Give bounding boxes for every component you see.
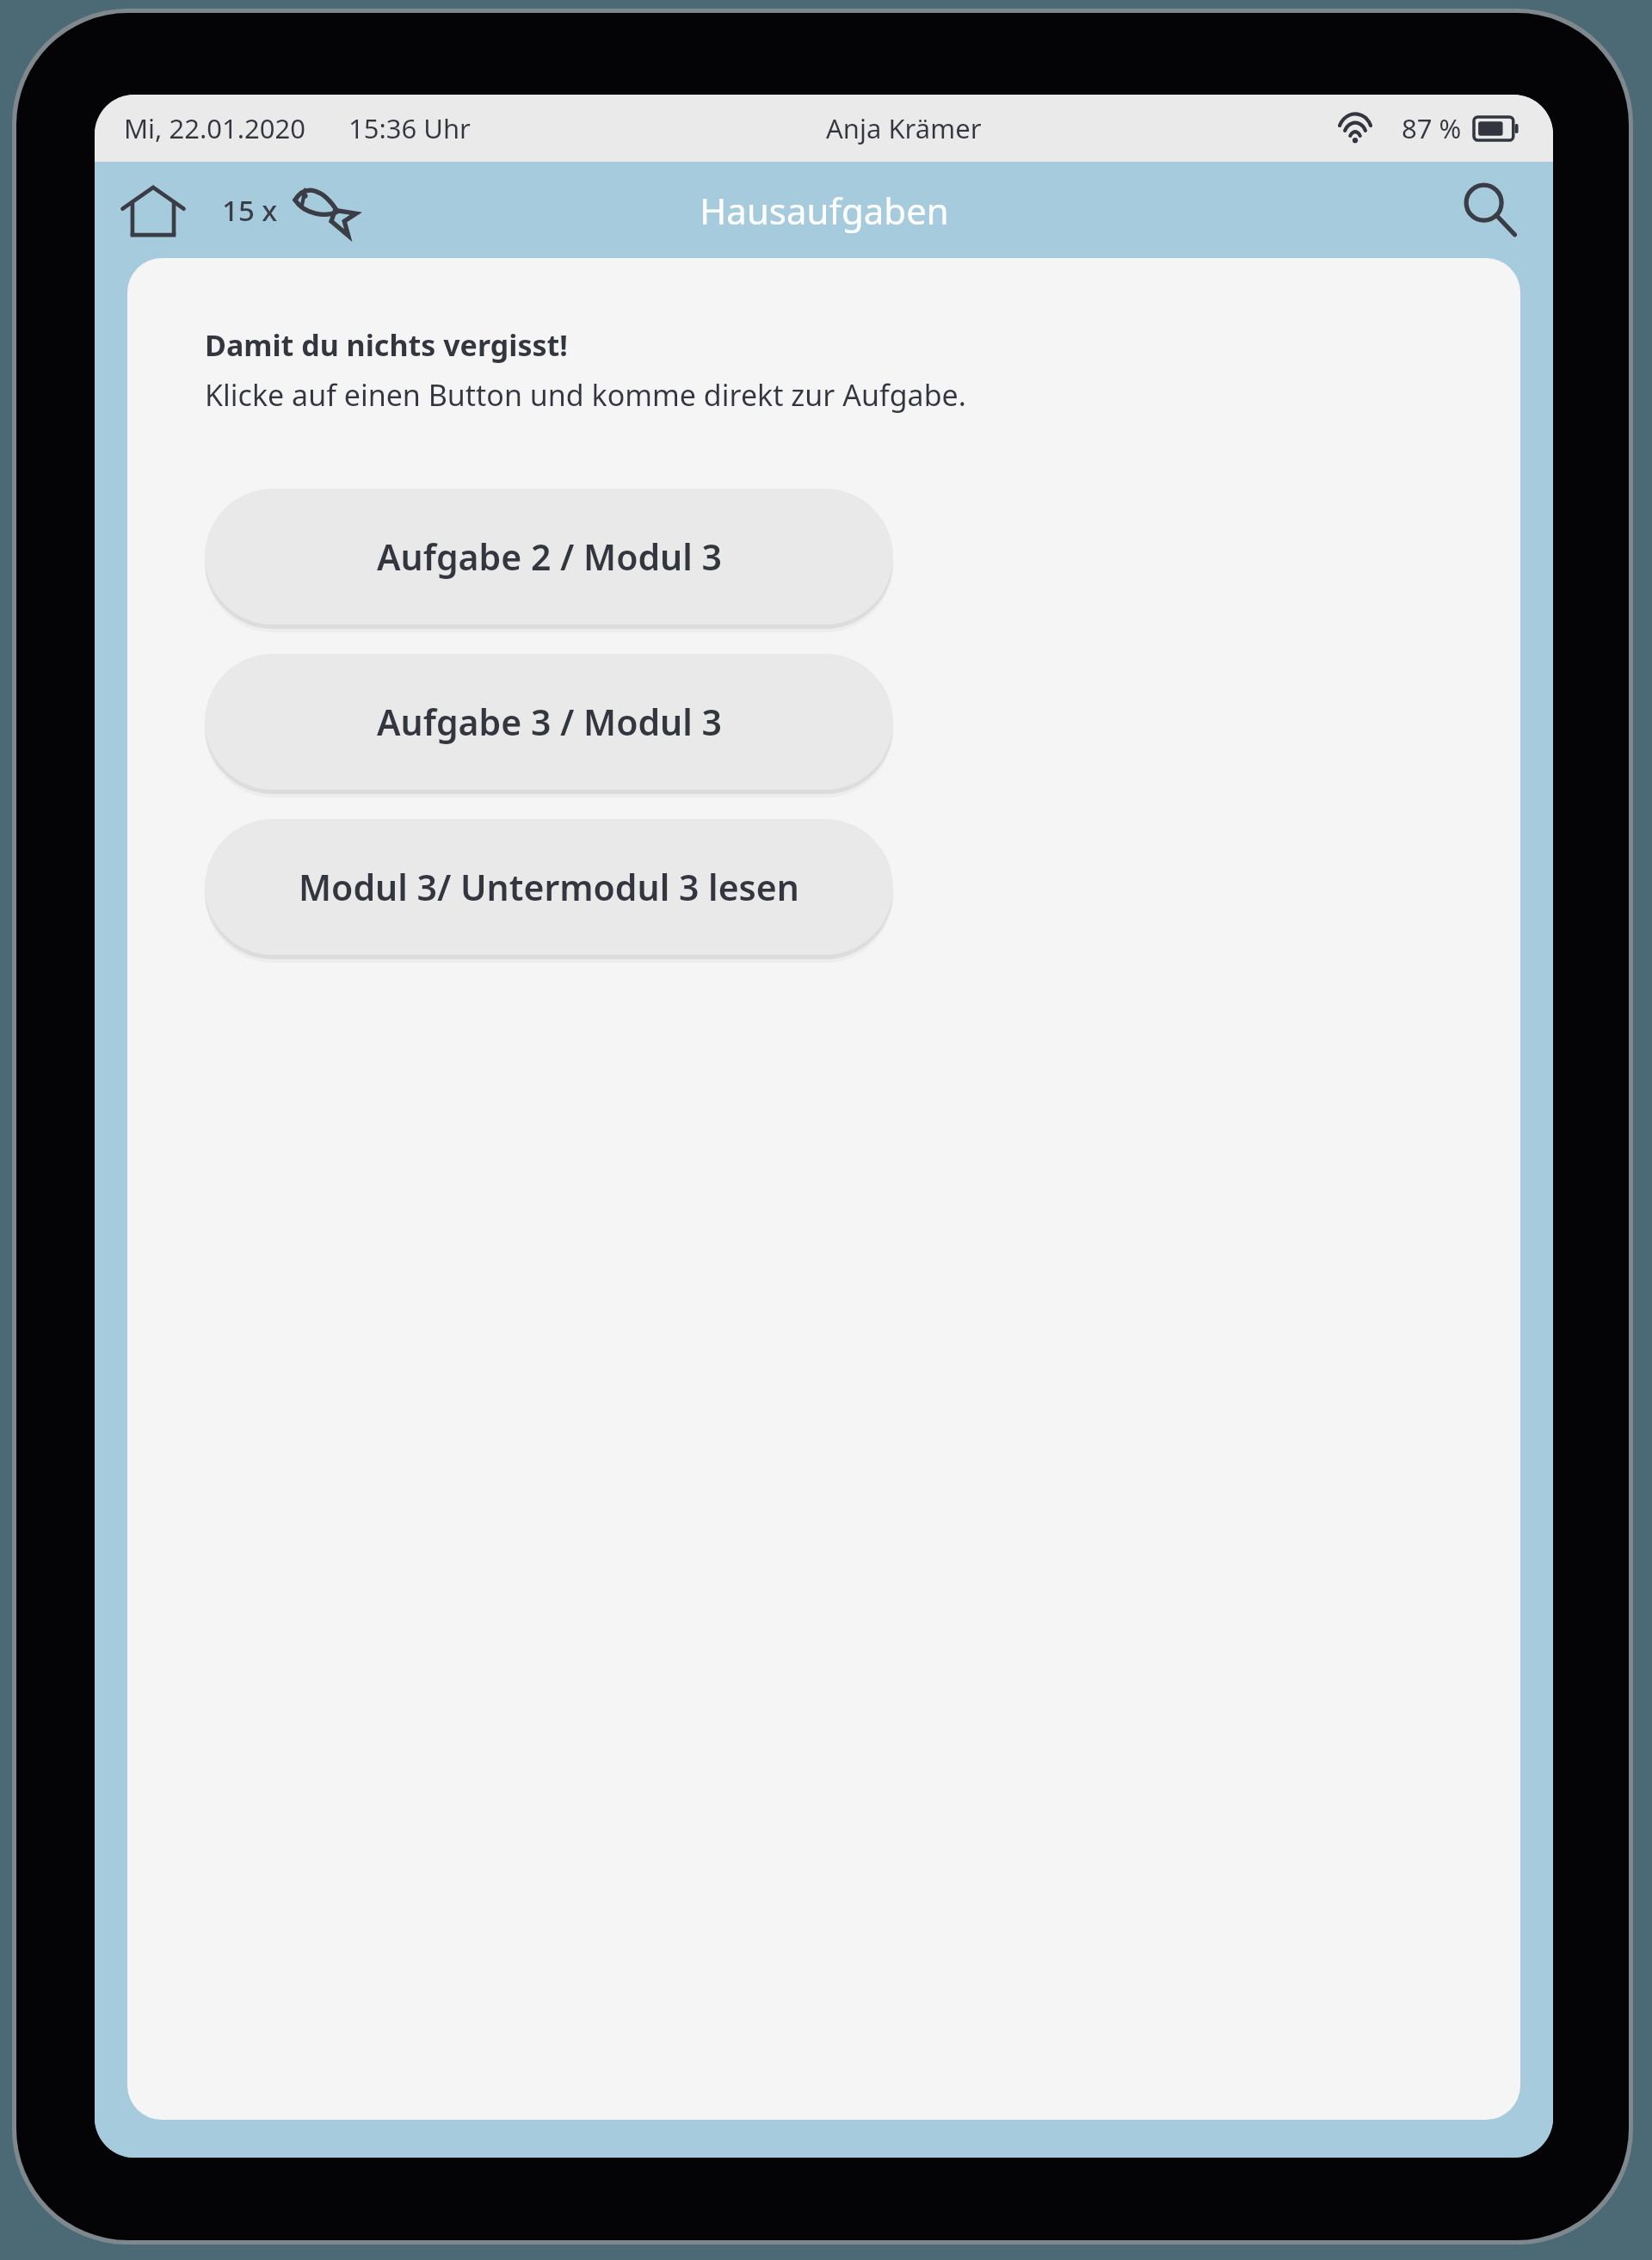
staticText: Damit du nichts vergisst!	[205, 325, 568, 365]
button[interactable]: Modul 3/ Untermodul 3 lesen	[205, 819, 893, 955]
staticText: Klicke auf einen Button und komme direkt…	[205, 375, 966, 415]
button[interactable]: Aufgabe 2 / Modul 3	[205, 489, 893, 625]
staticText: Anja Krämer	[826, 110, 982, 146]
button[interactable]: Home	[115, 175, 191, 245]
button[interactable]: Aufgabe 3 / Modul 3	[205, 654, 893, 790]
staticText: Aufgabe 2 / Modul 3	[377, 533, 722, 581]
button[interactable]: Search	[1450, 170, 1529, 249]
staticText: 15 x	[222, 191, 278, 230]
staticText: Mi, 22.01.2020	[124, 110, 305, 146]
staticText: Modul 3/ Untermodul 3 lesen	[299, 863, 799, 911]
staticText: Hausaufgaben	[700, 186, 949, 235]
button[interactable]: 15 Fische	[219, 176, 361, 244]
staticText: Aufgabe 3 / Modul 3	[377, 698, 722, 746]
staticText: 15:36 Uhr	[348, 110, 471, 146]
staticText: 87 %	[1402, 110, 1462, 146]
